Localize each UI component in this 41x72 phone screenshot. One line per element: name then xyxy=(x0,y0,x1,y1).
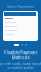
staticText: Online Payments xyxy=(7,5,34,9)
staticText: Flexible Payment xyxy=(4,50,37,55)
staticText: Pay with cards, bank transfer xyxy=(0,62,41,66)
staticText: Methods xyxy=(11,55,29,60)
staticText: or mobile wallet xyxy=(7,66,33,70)
